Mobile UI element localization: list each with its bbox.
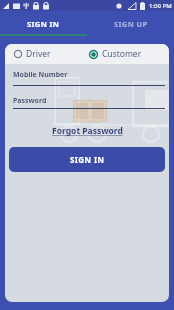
button[interactable]: SIGN IN <box>0 11 87 36</box>
staticText: Mobile Number <box>13 70 68 80</box>
button[interactable]: Customer <box>89 48 142 60</box>
button[interactable]: Driver <box>14 48 51 60</box>
button[interactable]: Forgot Password <box>52 125 123 137</box>
staticText: SIGN UP <box>114 19 148 29</box>
staticText: 1:00 PM <box>149 2 172 10</box>
staticText: Password <box>13 96 47 106</box>
staticText: SIGN IN <box>70 154 105 165</box>
staticText: SIGN IN <box>27 19 60 29</box>
button[interactable]: SIGN IN <box>9 147 165 172</box>
staticText: Customer <box>102 48 142 60</box>
button[interactable]: SIGN UP <box>87 11 174 36</box>
staticText: Driver <box>26 48 51 60</box>
